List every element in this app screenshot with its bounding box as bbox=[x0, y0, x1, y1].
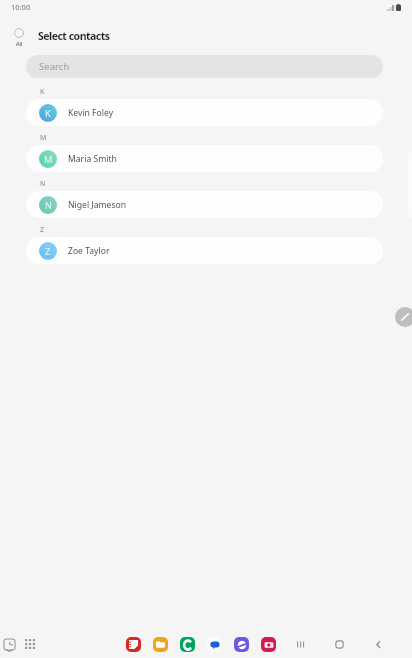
button[interactable]: M bbox=[26, 145, 383, 172]
staticText: N bbox=[45, 199, 52, 212]
button[interactable]: Search bbox=[26, 55, 383, 78]
button[interactable]: All apps bbox=[25, 639, 35, 649]
button[interactable]: Recents bbox=[295, 639, 306, 650]
button[interactable]: Recent apps bbox=[4, 639, 15, 650]
staticText: M bbox=[40, 133, 47, 143]
staticText: M bbox=[44, 153, 53, 166]
staticText: N bbox=[40, 179, 46, 189]
button[interactable]: Back bbox=[373, 639, 384, 650]
staticText: Search bbox=[39, 60, 70, 73]
staticText: Kevin Foley bbox=[68, 107, 114, 119]
staticText: Z bbox=[45, 245, 51, 258]
staticText: Select contacts bbox=[38, 29, 110, 43]
button[interactable]: Messages bbox=[207, 637, 222, 652]
staticText: 10:00 bbox=[11, 2, 31, 12]
staticText: Z bbox=[40, 225, 45, 235]
staticText: K bbox=[40, 87, 45, 97]
button[interactable]: Select all bbox=[8, 28, 30, 47]
button[interactable]: Compose message bbox=[395, 307, 412, 327]
button[interactable]: Notes bbox=[126, 637, 141, 652]
button[interactable]: Camera bbox=[261, 637, 276, 652]
button[interactable]: Home bbox=[334, 639, 345, 650]
staticText: K bbox=[45, 107, 51, 120]
staticText: All bbox=[16, 40, 23, 47]
staticText: Maria Smith bbox=[68, 153, 117, 165]
button[interactable]: My Files bbox=[153, 637, 168, 652]
button[interactable]: Internet bbox=[234, 637, 249, 652]
staticText: Nigel Jameson bbox=[68, 199, 127, 211]
button[interactable]: N bbox=[26, 191, 383, 218]
button[interactable]: Phone bbox=[180, 637, 195, 652]
button[interactable]: Z bbox=[26, 237, 383, 264]
staticText: Zoe Taylor bbox=[68, 245, 110, 257]
button[interactable]: K bbox=[26, 99, 383, 126]
